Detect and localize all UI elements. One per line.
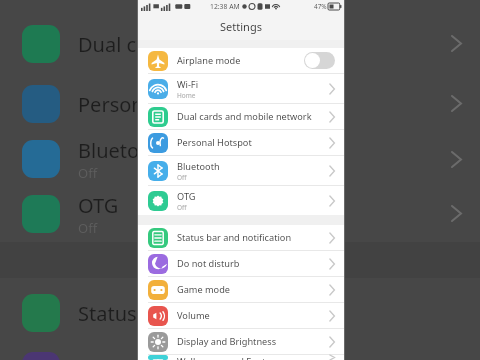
button[interactable]: Display and Brightness: [138, 329, 344, 355]
button[interactable]: Airplane mode: [138, 48, 344, 74]
staticText: Off: [177, 203, 187, 212]
button[interactable]: Game mode: [138, 277, 344, 303]
staticText: 47%: [314, 2, 327, 11]
button[interactable]: Airplane mode toggle: [304, 52, 335, 69]
staticText: Personal Hotspot: [177, 136, 252, 149]
staticText: Off: [177, 173, 187, 182]
staticText: Blueto: [78, 137, 140, 164]
staticText: Volume: [177, 309, 210, 322]
button[interactable]: Dual cards and mobile network: [138, 104, 344, 130]
staticText: OTG: [78, 192, 119, 219]
staticText: Dual c: [78, 31, 137, 58]
staticText: Do not disturb: [177, 257, 240, 270]
staticText: 12:38 AM: [210, 2, 240, 11]
button[interactable]: Wi-Fi: [138, 74, 344, 104]
staticText: Display and Brightness: [177, 335, 277, 348]
staticText: Airplane mode: [177, 54, 241, 67]
staticText: Off: [78, 219, 98, 237]
staticText: Off: [78, 164, 98, 182]
button[interactable]: OTG: [138, 186, 344, 215]
staticText: Home: [177, 91, 196, 100]
button[interactable]: Bluetooth: [138, 156, 344, 186]
button[interactable]: Personal Hotspot: [138, 130, 344, 156]
staticText: OTG: [177, 190, 196, 203]
staticText: Dual cards and mobile network: [177, 110, 312, 123]
button[interactable]: Do not disturb: [138, 251, 344, 277]
staticText: Game mode: [177, 283, 230, 296]
staticText: Status bar and notification: [177, 231, 292, 244]
button[interactable]: Wallpapers and Fonts: [138, 355, 344, 360]
staticText: Wi-Fi: [177, 78, 199, 91]
staticText: Bluetooth: [177, 160, 220, 173]
staticText: Status: [78, 300, 137, 327]
button[interactable]: Volume: [138, 303, 344, 329]
staticText: Wallpapers and Fonts: [177, 355, 271, 360]
staticText: Person: [78, 91, 144, 118]
button[interactable]: Status bar and notification: [138, 225, 344, 251]
staticText: Settings: [220, 19, 262, 34]
